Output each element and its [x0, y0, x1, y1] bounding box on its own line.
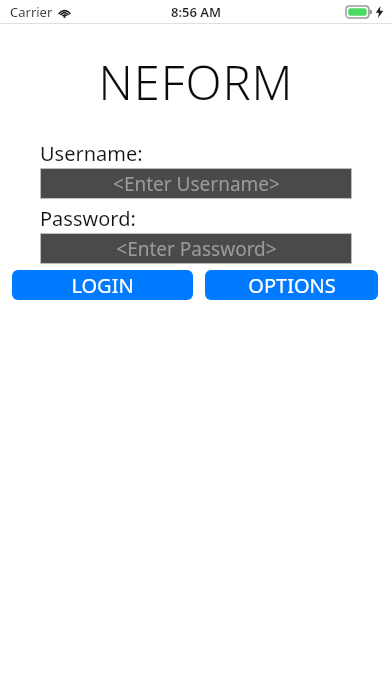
button[interactable]: <Enter Username> [40, 168, 352, 199]
staticText: LOGIN [71, 272, 134, 299]
staticText: Username: [40, 140, 143, 166]
button[interactable]: OPTIONS [205, 270, 378, 300]
staticText: Password: [40, 205, 136, 231]
staticText: NEFORM [98, 50, 294, 112]
button[interactable]: LOGIN [12, 270, 193, 300]
staticText: Carrier [10, 3, 53, 21]
staticText: OPTIONS [248, 272, 336, 299]
staticText: 8:56 AM [171, 3, 222, 21]
staticText: <Enter Username> [113, 171, 280, 197]
button[interactable]: <Enter Password> [40, 233, 352, 264]
staticText: <Enter Password> [116, 236, 277, 262]
